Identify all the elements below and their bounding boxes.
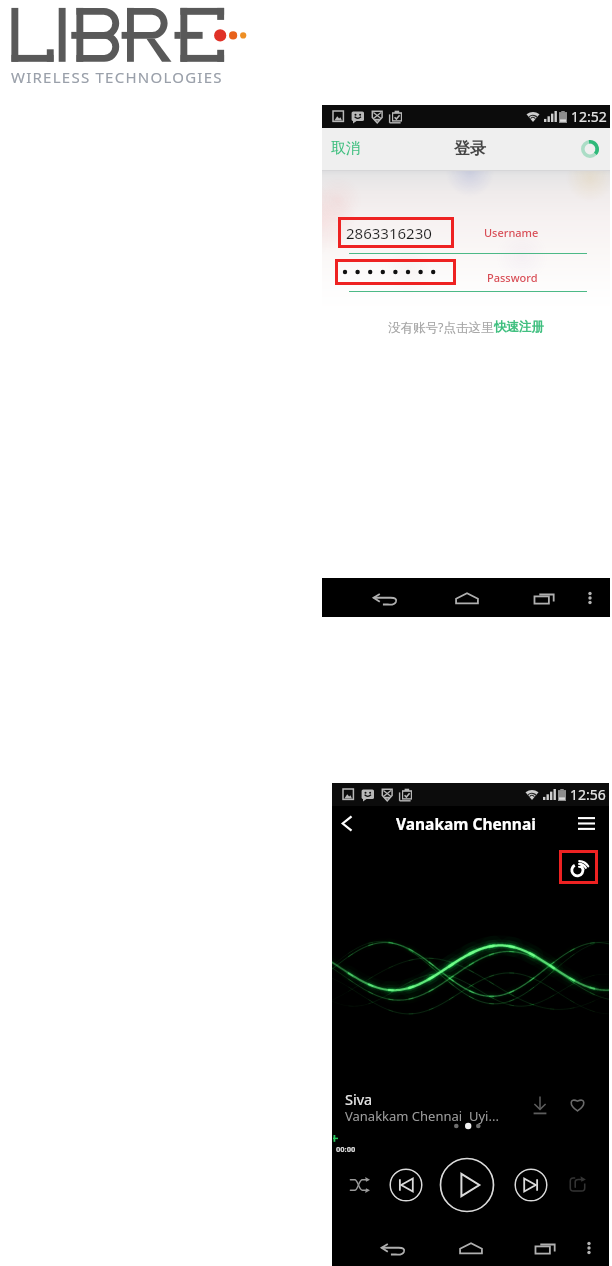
staticText: 登录 <box>454 139 486 159</box>
button[interactable]: Home <box>458 1241 484 1256</box>
button[interactable]: 2863316230 <box>338 217 454 248</box>
staticText: WIRELESS TECHNOLOGIES <box>11 67 223 87</box>
staticText: 2863316230 <box>346 223 432 243</box>
button[interactable]: Refresh <box>581 140 599 158</box>
button[interactable]: Previous <box>389 1168 423 1202</box>
button[interactable]: Home <box>454 591 480 606</box>
staticText: Vanakam Chennai <box>396 813 536 834</box>
staticText: Username <box>484 225 539 240</box>
button[interactable]: Recents <box>534 590 558 606</box>
staticText: 快速注册 <box>494 319 544 335</box>
button[interactable]: Back <box>337 814 356 833</box>
button[interactable]: Menu <box>578 817 595 830</box>
button[interactable]: Shuffle <box>350 1177 370 1193</box>
button[interactable]: Play <box>439 1157 495 1213</box>
staticText: 没有账号?点击这里 <box>388 319 494 336</box>
button[interactable]: Connect speaker <box>559 850 598 884</box>
button[interactable]: Favorite <box>568 1096 587 1113</box>
staticText: Password <box>487 270 538 285</box>
button[interactable]: Back <box>372 591 398 606</box>
button[interactable]: More options <box>583 1240 595 1256</box>
button[interactable]: Recents <box>535 1240 559 1256</box>
button[interactable] <box>335 259 456 285</box>
button[interactable]: Back <box>380 1241 406 1256</box>
staticText: Vanakkam Chennai Uyi... <box>345 1107 499 1125</box>
button[interactable]: Download <box>530 1095 550 1115</box>
staticText: 00:00 <box>336 1144 356 1154</box>
button[interactable]: Next <box>514 1168 548 1202</box>
button[interactable]: 取消 <box>331 139 361 158</box>
button[interactable]: 没有账号?点击这里 <box>322 319 610 336</box>
staticText: Siva <box>345 1089 373 1109</box>
staticText: 12:52 <box>571 107 607 126</box>
button[interactable]: More options <box>584 590 596 606</box>
button[interactable]: Repeat <box>568 1176 587 1193</box>
staticText: 12:56 <box>570 785 606 804</box>
